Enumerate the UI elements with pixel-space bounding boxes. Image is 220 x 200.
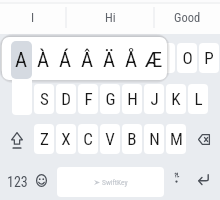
staticText: F bbox=[84, 89, 93, 109]
staticText: 123 bbox=[7, 174, 28, 190]
button[interactable]: T bbox=[89, 43, 109, 73]
button[interactable]: Ä bbox=[99, 41, 120, 79]
staticText: Å bbox=[125, 48, 138, 73]
button[interactable]: À bbox=[33, 41, 54, 79]
staticText: I bbox=[31, 10, 35, 25]
button[interactable]: Space bbox=[57, 167, 164, 197]
button[interactable]: Backspace bbox=[188, 124, 218, 154]
button[interactable]: C bbox=[78, 124, 98, 154]
staticText: Z bbox=[40, 129, 49, 149]
staticText: Good bbox=[174, 10, 201, 25]
button[interactable]: Q bbox=[1, 43, 21, 73]
staticText: B bbox=[127, 129, 137, 149]
staticText: O bbox=[182, 48, 193, 68]
staticText: A bbox=[15, 48, 28, 73]
staticText: Y bbox=[117, 48, 126, 68]
staticText: R bbox=[72, 48, 82, 68]
staticText: M bbox=[170, 129, 183, 149]
button[interactable]: H bbox=[122, 84, 142, 114]
staticText: Æ bbox=[145, 48, 163, 73]
button[interactable]: L bbox=[188, 84, 208, 114]
button[interactable]: Hi bbox=[66, 7, 154, 28]
button[interactable]: J bbox=[144, 84, 164, 114]
staticText: C bbox=[83, 129, 93, 149]
staticText: I bbox=[163, 48, 168, 68]
staticText: K bbox=[171, 89, 181, 109]
button[interactable]: Z bbox=[34, 124, 54, 154]
button[interactable]: K bbox=[166, 84, 186, 114]
button[interactable]: Good bbox=[154, 7, 220, 28]
staticText: X bbox=[61, 129, 71, 149]
button[interactable]: F bbox=[78, 84, 98, 114]
staticText: Ä bbox=[103, 48, 116, 73]
button[interactable]: I bbox=[0, 7, 66, 28]
staticText: Q bbox=[6, 48, 17, 68]
staticText: H bbox=[127, 89, 138, 109]
button[interactable]: V bbox=[100, 124, 120, 154]
staticText: SwiftKey bbox=[102, 178, 128, 187]
button[interactable]: Symbols bbox=[166, 167, 186, 197]
button[interactable]: Emoji bbox=[32, 167, 52, 197]
button[interactable]: S bbox=[34, 84, 54, 114]
staticText: Á bbox=[59, 48, 72, 73]
staticText: S bbox=[40, 89, 49, 109]
button[interactable]: P bbox=[199, 43, 219, 73]
button[interactable]: A bbox=[2, 37, 167, 80]
button[interactable]: Á bbox=[55, 41, 76, 79]
button[interactable]: Æ bbox=[143, 41, 164, 79]
button[interactable]: D bbox=[56, 84, 76, 114]
staticText: J bbox=[150, 89, 159, 109]
staticText: À bbox=[37, 48, 50, 73]
button[interactable]: R bbox=[67, 43, 87, 73]
button[interactable]: B bbox=[122, 124, 142, 154]
button[interactable]: N bbox=[144, 124, 164, 154]
staticText: N bbox=[149, 129, 160, 149]
staticText: D bbox=[61, 89, 71, 109]
staticText: E bbox=[51, 48, 60, 68]
button[interactable]: Â bbox=[77, 41, 98, 79]
staticText: L bbox=[194, 89, 203, 109]
button[interactable]: W bbox=[23, 43, 43, 73]
staticText: V bbox=[105, 129, 115, 149]
staticText: G bbox=[105, 89, 116, 109]
button[interactable]: I bbox=[155, 43, 175, 73]
button[interactable]: U bbox=[133, 43, 153, 73]
button[interactable]: Enter bbox=[190, 167, 217, 197]
staticText: P bbox=[204, 48, 214, 68]
button[interactable]: 123 bbox=[2, 167, 32, 197]
button[interactable]: E bbox=[45, 43, 65, 73]
button[interactable]: Shift bbox=[2, 124, 32, 154]
button[interactable]: G bbox=[100, 84, 120, 114]
staticText: U bbox=[138, 48, 148, 68]
staticText: W bbox=[27, 48, 40, 68]
staticText: T bbox=[95, 48, 104, 68]
button[interactable]: Å bbox=[121, 41, 142, 79]
button[interactable]: Y bbox=[111, 43, 131, 73]
button[interactable]: O bbox=[177, 43, 197, 73]
button[interactable]: A bbox=[11, 41, 32, 79]
button[interactable]: X bbox=[56, 124, 76, 154]
staticText: Hi bbox=[105, 10, 116, 25]
button[interactable]: M bbox=[166, 124, 186, 154]
staticText: Â bbox=[81, 48, 94, 73]
